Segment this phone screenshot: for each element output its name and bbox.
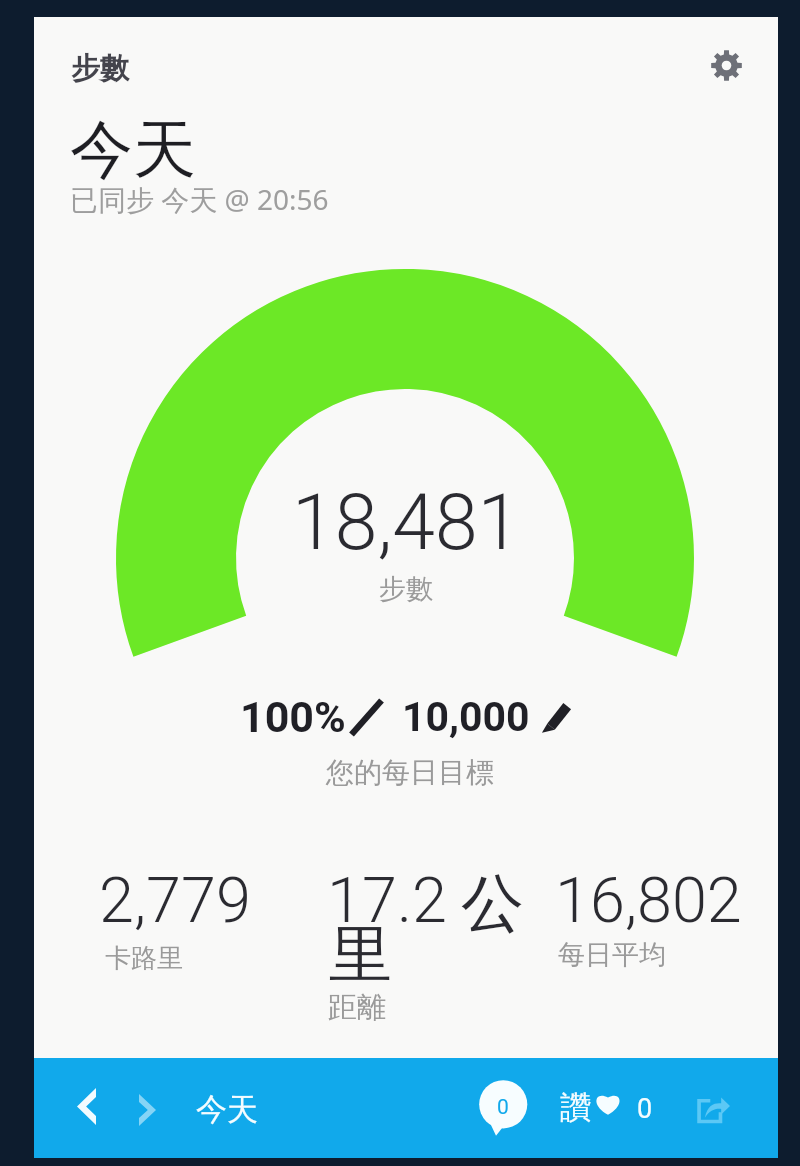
staticText: 公 <box>461 864 524 943</box>
button[interactable]: Comments <box>478 1080 536 1138</box>
staticText: 0 <box>497 1095 509 1120</box>
staticText: 讚 <box>560 1088 591 1127</box>
button[interactable]: 100% <box>234 672 594 734</box>
staticText: 0 <box>637 1093 653 1125</box>
staticText: 已同步 今天 @ 20:56 <box>70 180 329 218</box>
staticText: 100% <box>240 692 346 742</box>
staticText: 2,779 <box>99 864 251 938</box>
button[interactable]: 步數 <box>54 37 194 101</box>
staticText: 卡路里 <box>105 942 183 975</box>
staticText: 16,802 <box>555 864 742 938</box>
staticText: 步數 <box>71 50 129 87</box>
staticText: 10,000 <box>402 693 530 741</box>
staticText: 里 <box>329 915 392 994</box>
button[interactable]: Next day <box>121 1084 173 1136</box>
staticText: 18,481 <box>292 478 521 568</box>
button[interactable]: Previous day <box>60 1080 112 1132</box>
staticText: 您的每日目標 <box>326 755 494 790</box>
button[interactable]: 今天 <box>196 1090 258 1129</box>
button[interactable]: 讚 <box>555 1074 695 1138</box>
staticText: 距離 <box>328 989 386 1026</box>
staticText: 17.2 <box>327 864 447 938</box>
staticText: 步數 <box>379 572 433 606</box>
button[interactable]: Settings <box>702 41 750 89</box>
staticText: 今天 <box>70 110 196 189</box>
button[interactable]: Share <box>684 1081 742 1139</box>
staticText: 每日平均 <box>558 938 666 972</box>
